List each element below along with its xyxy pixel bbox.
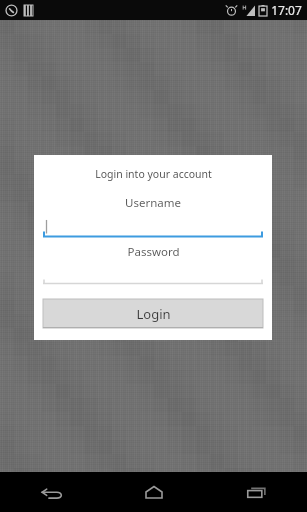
staticText: Login	[136, 305, 171, 323]
button[interactable]: Login	[43, 299, 263, 328]
button[interactable]: Recent apps	[205, 472, 307, 512]
staticText: Password	[127, 244, 180, 260]
staticText: 17:07	[271, 2, 302, 18]
staticText: Username	[125, 195, 181, 211]
button[interactable]: Username input field	[43, 216, 263, 238]
button[interactable]: Password input field	[43, 265, 263, 285]
staticText: Login into your account	[95, 167, 212, 181]
button[interactable]: Home	[103, 472, 205, 512]
button[interactable]: Back	[0, 472, 103, 512]
